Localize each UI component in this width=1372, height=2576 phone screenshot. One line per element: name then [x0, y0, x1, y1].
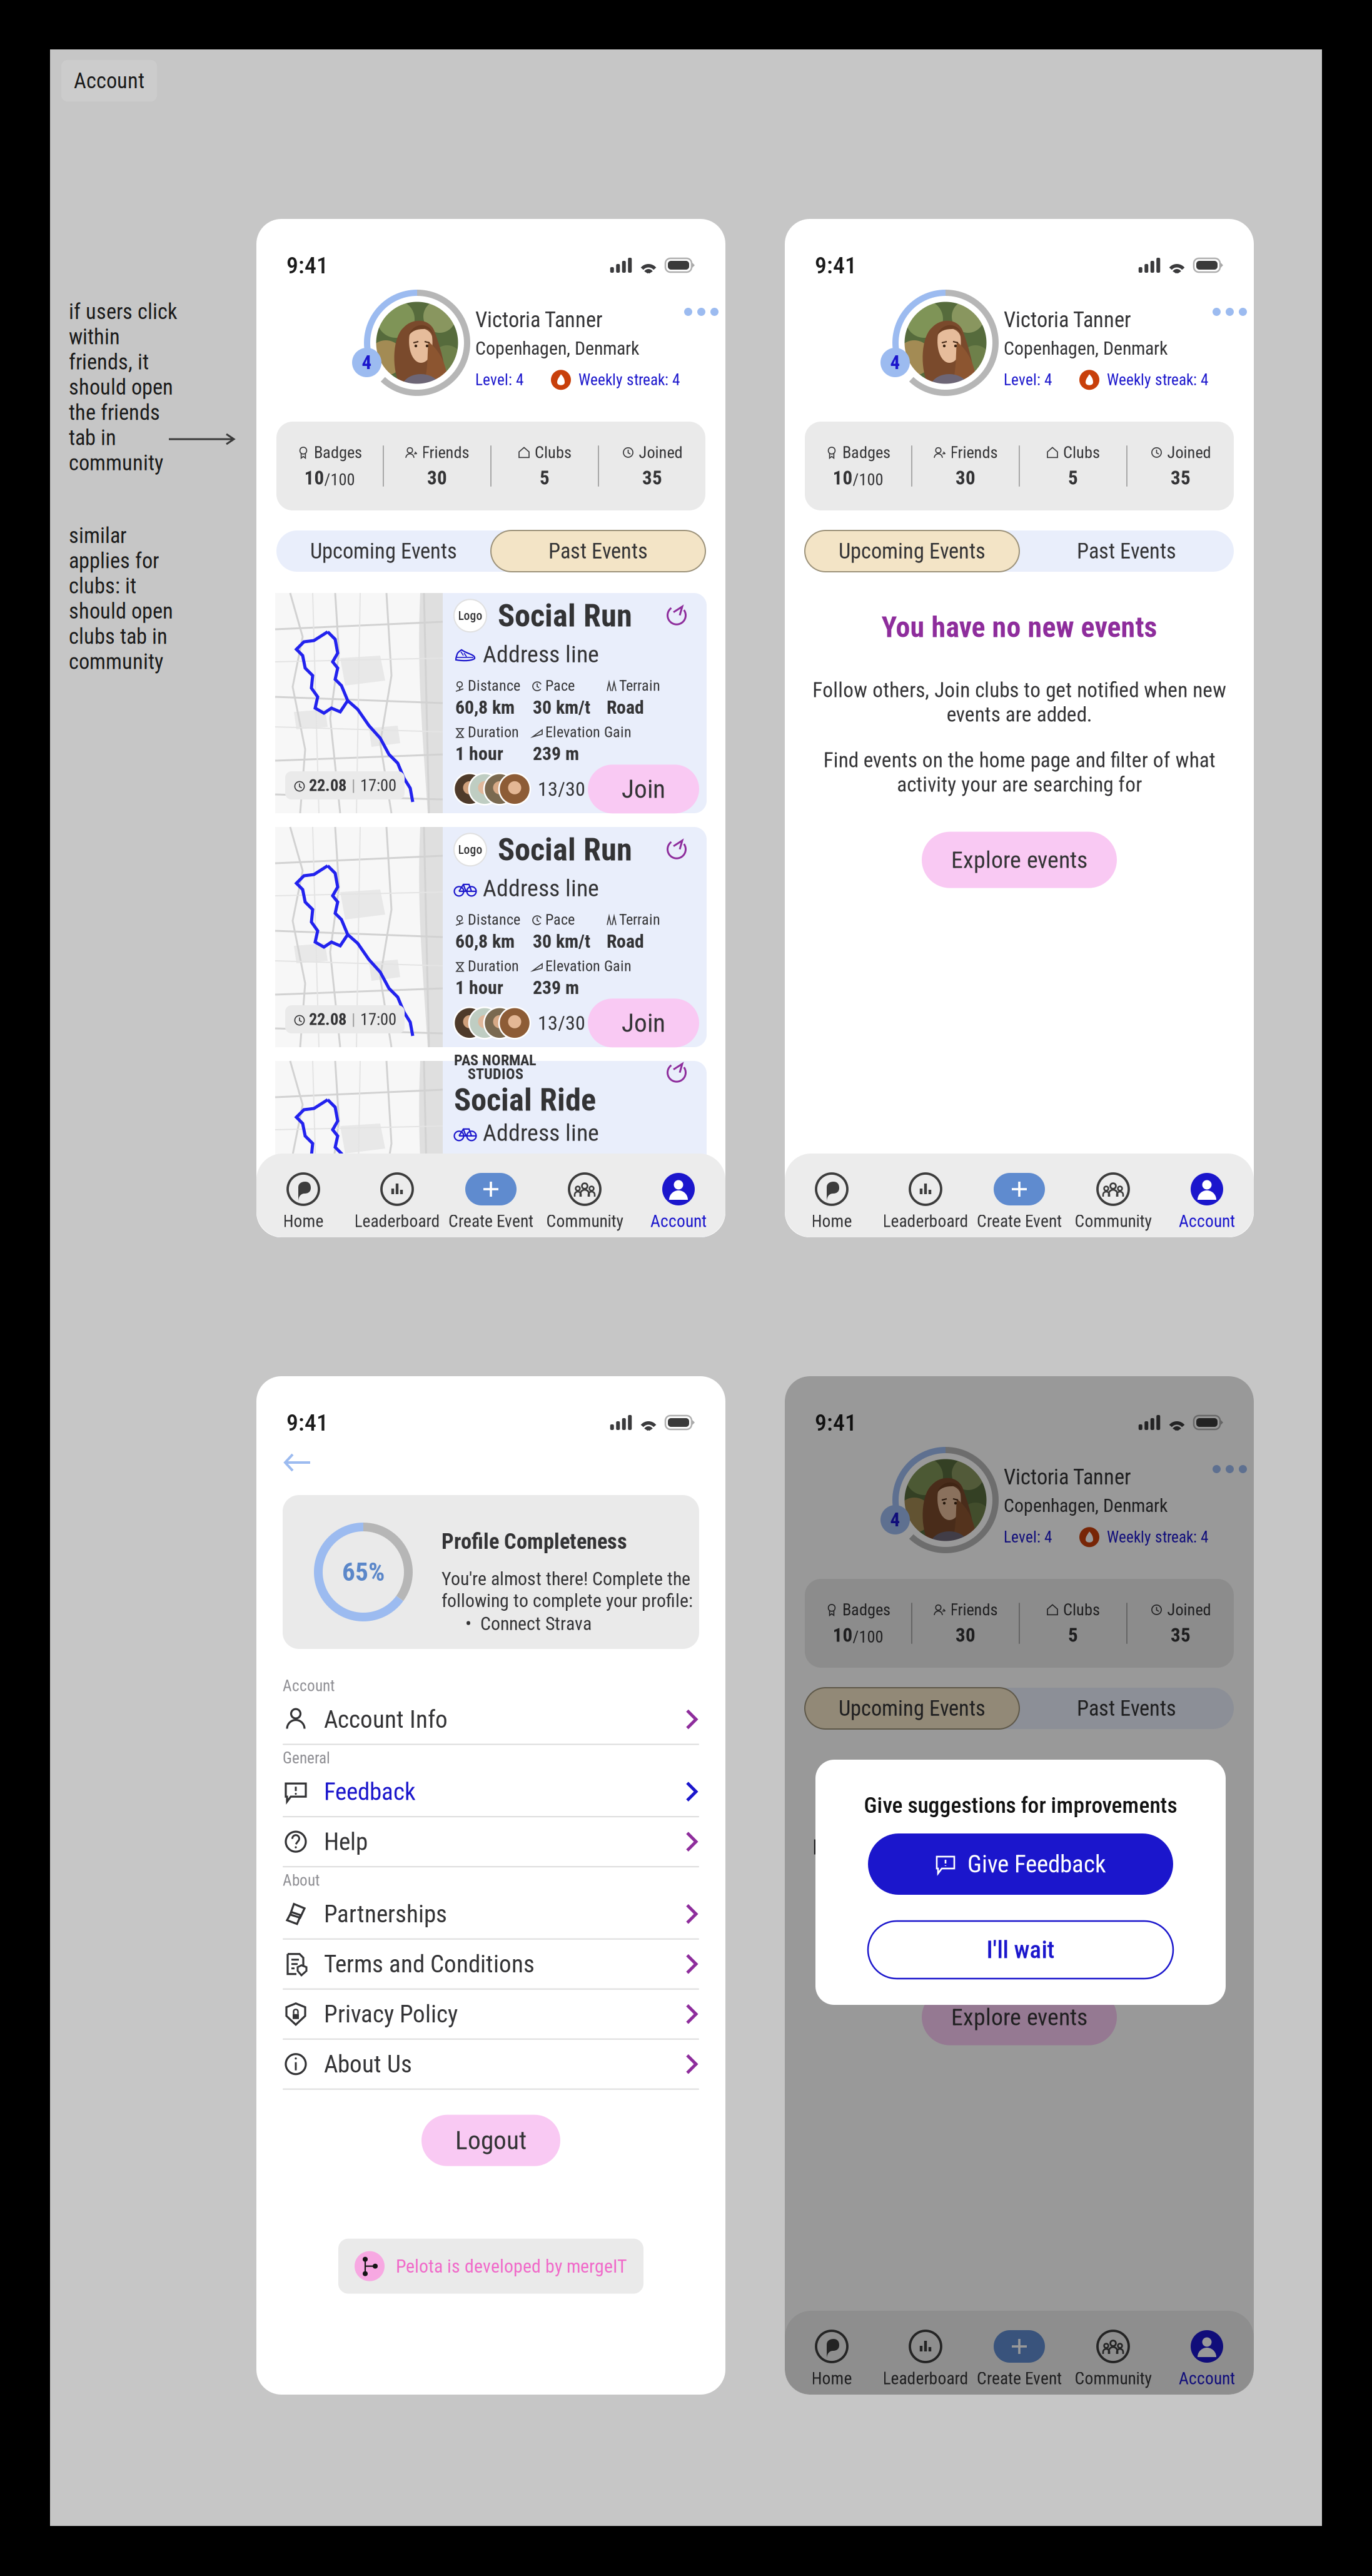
button[interactable]: Account — [632, 1154, 725, 1237]
button[interactable]: Leaderboard — [879, 2311, 972, 2395]
button[interactable]: Give Feedback — [868, 1833, 1173, 1895]
button[interactable]: More options — [1204, 1456, 1256, 1482]
staticText: Weekly streak: 4 — [1107, 1528, 1208, 1546]
staticText: About Us — [324, 2050, 412, 2078]
staticText: 35 — [642, 467, 662, 489]
staticText: • Connect Strava — [465, 1613, 592, 1635]
button[interactable]: Account — [1160, 1154, 1254, 1237]
staticText: STUDIOS — [468, 1065, 523, 1083]
button[interactable]: Community — [1066, 1154, 1160, 1237]
staticText: Help — [324, 1827, 368, 1856]
button[interactable]: Friends — [912, 1579, 1019, 1668]
button[interactable]: Partnerships — [283, 1890, 699, 1940]
button[interactable]: Home — [256, 1154, 350, 1237]
button[interactable]: Clubs — [1020, 1579, 1126, 1668]
button[interactable]: Clubs — [1020, 422, 1126, 510]
button[interactable]: More options — [675, 299, 727, 325]
staticText: Duration — [468, 1202, 519, 1219]
button[interactable]: Terms and Conditions — [283, 1940, 699, 1990]
staticText: 239 m — [533, 1221, 579, 1243]
staticText: 10 — [833, 1624, 853, 1647]
button[interactable]: Badges — [805, 1579, 911, 1668]
staticText: Duration — [468, 723, 519, 741]
button[interactable]: Upcoming Events — [805, 1688, 1019, 1729]
staticText: 60,8 km — [455, 930, 515, 952]
staticText: Social Run — [498, 831, 632, 868]
staticText: Social Ride — [454, 1081, 596, 1118]
staticText: Distance — [468, 677, 520, 694]
button[interactable]: Badges — [805, 422, 911, 510]
staticText: Follow others, Join clubs to get notifie… — [812, 1835, 1226, 1884]
staticText: Leaderboard — [883, 1211, 968, 1231]
staticText: 30 — [956, 467, 976, 489]
button[interactable]: Feedback — [283, 1767, 699, 1817]
staticText: Community — [1075, 1211, 1152, 1231]
button[interactable]: Logout — [421, 2115, 560, 2166]
button[interactable]: Explore events — [922, 832, 1117, 888]
staticText: Account — [74, 68, 144, 93]
staticText: 9:41 — [815, 1409, 857, 1436]
button[interactable]: Past Events — [1019, 1688, 1234, 1729]
button[interactable]: About Us — [283, 2040, 699, 2090]
staticText: Past Events — [548, 538, 648, 564]
button[interactable]: Privacy Policy — [283, 1990, 699, 2040]
button[interactable]: Share — [660, 831, 694, 864]
staticText: Copenhagen, Denmark — [1004, 1495, 1168, 1516]
button[interactable]: I'll wait — [868, 1921, 1173, 1979]
staticText: Find events on the home page and filter … — [823, 748, 1215, 797]
button[interactable]: Clubs — [492, 422, 598, 510]
button[interactable]: Past Events — [1019, 530, 1234, 572]
button[interactable]: Community — [1066, 2311, 1160, 2395]
staticText: Community — [1075, 2368, 1152, 2388]
button[interactable]: Joined — [599, 422, 705, 510]
staticText: Past Events — [1077, 538, 1176, 564]
staticText: 239 m — [533, 977, 579, 999]
button[interactable]: Friends — [912, 422, 1019, 510]
staticText: Leaderboard — [883, 2368, 968, 2388]
button[interactable]: Join — [588, 999, 699, 1047]
button[interactable]: Past Events — [491, 530, 705, 572]
button[interactable]: Home — [785, 2311, 879, 2395]
staticText: 10 — [304, 467, 324, 489]
staticText: Create Event — [977, 2368, 1062, 2388]
button[interactable]: Leaderboard — [350, 1154, 444, 1237]
staticText: Logo — [458, 609, 482, 623]
staticText: Create Event — [977, 1211, 1062, 1231]
staticText: Badges — [842, 443, 890, 462]
button[interactable]: Create Event — [444, 1154, 538, 1237]
staticText: Pace — [545, 911, 575, 928]
button[interactable]: Create Event — [972, 1154, 1066, 1237]
button[interactable]: Friends — [384, 422, 490, 510]
button[interactable]: Joined — [1127, 422, 1234, 510]
button[interactable]: Account Info — [283, 1695, 699, 1745]
button[interactable]: Upcoming Events — [276, 530, 491, 572]
staticText: Clubs — [1063, 1600, 1100, 1619]
button[interactable]: Account — [1160, 2311, 1254, 2395]
staticText: 17:00 — [360, 776, 396, 795]
staticText: Account Info — [324, 1705, 448, 1734]
staticText: Friends — [950, 443, 998, 462]
staticText: Past Events — [1077, 1696, 1176, 1721]
button[interactable]: Joined — [1127, 1579, 1234, 1668]
button[interactable]: Community — [538, 1154, 632, 1237]
staticText: Leaderboard — [354, 1211, 440, 1231]
button[interactable]: Help — [283, 1817, 699, 1867]
staticText: 5 — [1068, 1624, 1078, 1647]
button[interactable]: Badges — [276, 422, 383, 510]
staticText: Copenhagen, Denmark — [1004, 337, 1168, 359]
button[interactable]: Back — [276, 1445, 319, 1480]
button[interactable]: Leaderboard — [879, 1154, 972, 1237]
button[interactable]: More options — [1204, 299, 1256, 325]
staticText: Home — [811, 1211, 852, 1231]
staticText: 35 — [1171, 1624, 1191, 1647]
button[interactable]: Share — [660, 1054, 694, 1088]
button[interactable]: Upcoming Events — [805, 530, 1019, 572]
button[interactable]: Home — [785, 1154, 879, 1237]
button[interactable]: Share — [660, 597, 694, 630]
button[interactable]: Create Event — [972, 2311, 1066, 2395]
button[interactable]: Join — [588, 765, 699, 813]
